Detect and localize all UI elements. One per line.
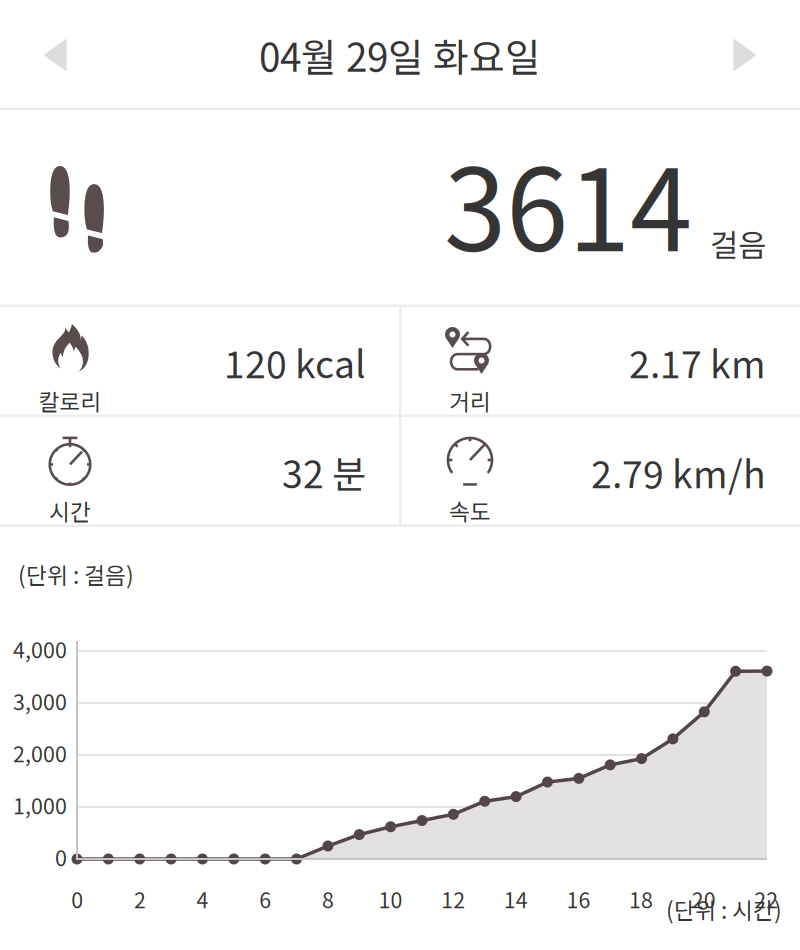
staticText: 120 kcal [224,335,366,389]
staticText: 6 [259,884,271,914]
staticText: 2,000 [13,738,67,768]
staticText: (단위 : 시간) [666,893,782,925]
staticText: 1,000 [13,790,67,820]
staticText: 04월 29일 화요일 [259,27,541,83]
staticText: 칼로리 [38,384,101,417]
staticText: 22 [754,884,778,914]
staticText: 3,000 [13,686,67,716]
button[interactable]: 이전 날 [0,0,110,110]
staticText: 시간 [49,494,91,527]
staticText: 2.17 km [629,335,766,389]
staticText: 10 [378,884,402,914]
staticText: 속도 [449,494,491,527]
button[interactable]: 다음 날 [690,0,800,110]
staticText: 14 [504,884,528,914]
staticText: 걸음 [710,221,766,266]
staticText: 32 분 [282,445,366,499]
staticText: 4 [197,884,209,914]
staticText: 2.79 km/h [591,445,766,499]
staticText: 20 [692,884,716,914]
staticText: 0 [71,884,83,914]
staticText: 12 [441,884,465,914]
staticText: 4,000 [13,634,67,664]
staticText: 18 [629,884,653,914]
staticText: 8 [322,884,334,914]
staticText: 0 [55,842,67,872]
staticText: 거리 [449,384,491,417]
staticText: 3614 [444,121,692,284]
staticText: 2 [134,884,146,914]
staticText: (단위 : 걸음) [18,558,134,590]
staticText: 16 [566,884,590,914]
